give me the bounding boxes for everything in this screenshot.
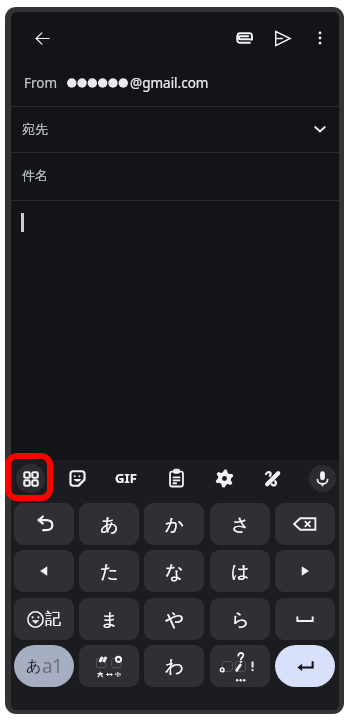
- staticText: a1: [42, 653, 63, 679]
- button[interactable]: 記: [14, 598, 74, 640]
- button[interactable]: [14, 503, 74, 545]
- button[interactable]: [11, 201, 339, 460]
- button[interactable]: [79, 645, 139, 687]
- button[interactable]: More options: [299, 17, 339, 59]
- button[interactable]: さ: [210, 503, 270, 545]
- button[interactable]: [14, 550, 74, 592]
- button[interactable]: ま: [79, 598, 139, 640]
- button[interactable]: Send: [261, 17, 303, 59]
- button[interactable]: Back: [21, 17, 63, 59]
- button[interactable]: [275, 503, 335, 545]
- button[interactable]: [275, 645, 335, 687]
- button[interactable]: [275, 550, 335, 592]
- button[interactable]: Attach file: [223, 17, 265, 59]
- button[interactable]: Clipboard: [159, 461, 193, 495]
- button[interactable]: ら: [210, 598, 270, 640]
- button[interactable]: From: [11, 60, 339, 106]
- staticText: や: [165, 608, 184, 631]
- staticText: は: [231, 560, 250, 583]
- button[interactable]: [275, 598, 335, 640]
- staticText: 宛先: [22, 121, 48, 137]
- button[interactable]: Settings: [207, 461, 241, 495]
- button[interactable]: は: [210, 550, 270, 592]
- staticText: た: [100, 560, 119, 583]
- staticText: From: [24, 74, 58, 92]
- staticText: あ: [26, 657, 42, 676]
- staticText: さ: [231, 513, 250, 536]
- button[interactable]: な: [144, 550, 204, 592]
- staticText: ま: [100, 608, 119, 631]
- staticText: わ: [165, 655, 184, 678]
- staticText: か: [165, 513, 184, 536]
- staticText: GIF: [115, 469, 138, 487]
- button[interactable]: あ: [14, 645, 74, 687]
- button[interactable]: 件名: [11, 152, 339, 198]
- button[interactable]: Keyboard modes: [13, 461, 47, 495]
- button[interactable]: あ: [79, 503, 139, 545]
- staticText: あ: [100, 513, 119, 536]
- staticText: @gmail.com: [130, 74, 209, 92]
- button[interactable]: た: [79, 550, 139, 592]
- staticText: な: [165, 560, 184, 583]
- button[interactable]: Handwriting: [255, 461, 289, 495]
- button[interactable]: わ: [144, 645, 204, 687]
- button[interactable]: や: [144, 598, 204, 640]
- button[interactable]: か: [144, 503, 204, 545]
- button[interactable]: 宛先: [11, 106, 339, 152]
- button[interactable]: GIF: [109, 461, 143, 495]
- staticText: ら: [231, 608, 250, 631]
- staticText: 件名: [22, 167, 48, 183]
- button[interactable]: Stickers: [60, 461, 94, 495]
- button[interactable]: [210, 645, 270, 687]
- staticText: 記: [45, 609, 61, 629]
- button[interactable]: Voice input: [305, 461, 339, 495]
